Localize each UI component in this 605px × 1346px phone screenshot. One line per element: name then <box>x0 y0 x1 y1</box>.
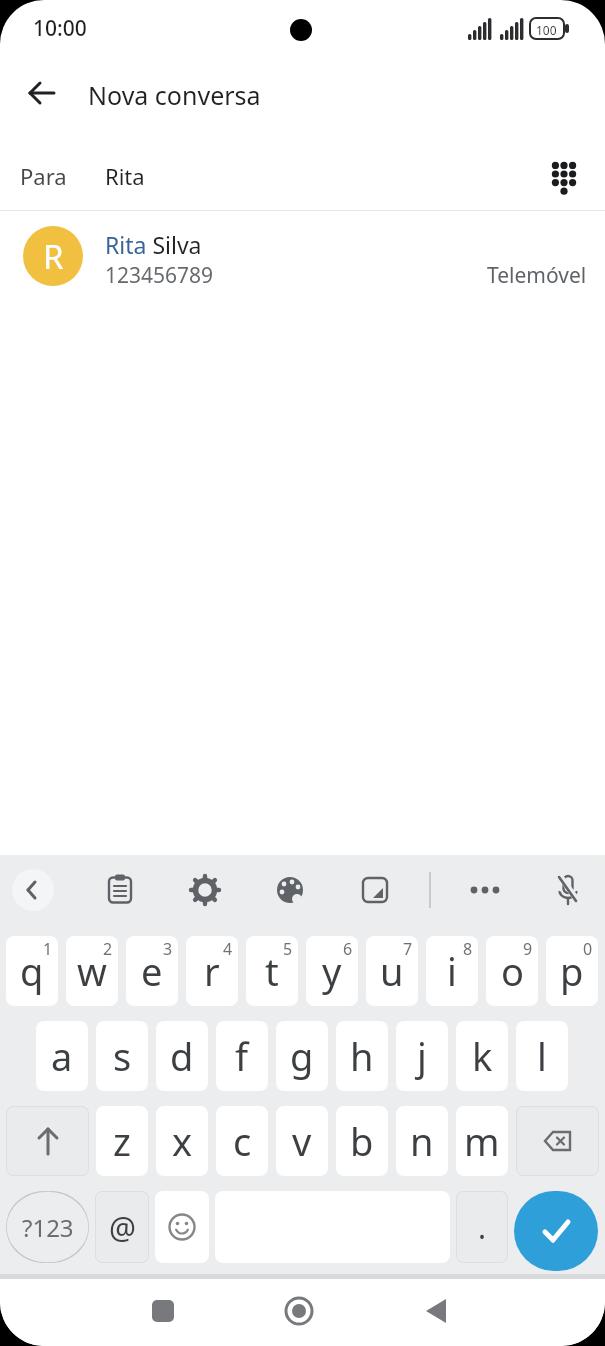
staticText: s <box>113 1030 132 1082</box>
staticText: y <box>322 945 342 997</box>
staticText: Rita Silva <box>105 229 202 260</box>
button[interactable] <box>415 1289 459 1333</box>
staticText: 7 <box>403 938 413 960</box>
button[interactable] <box>6 1106 89 1176</box>
button[interactable]: R <box>0 212 605 302</box>
staticText: i <box>447 945 457 997</box>
button[interactable]: c <box>216 1106 268 1176</box>
button[interactable] <box>268 868 312 912</box>
button[interactable]: u <box>366 936 418 1006</box>
staticText: 3 <box>163 938 173 960</box>
button[interactable]: x <box>156 1106 208 1176</box>
button[interactable] <box>141 1289 185 1333</box>
staticText: u <box>380 945 404 997</box>
button[interactable]: d <box>156 1021 208 1091</box>
staticText: c <box>233 1115 252 1167</box>
staticText: m <box>464 1115 500 1167</box>
staticText: R <box>43 234 64 279</box>
button[interactable]: k <box>456 1021 508 1091</box>
staticText: 2 <box>103 938 113 960</box>
staticText: v <box>292 1115 312 1167</box>
staticText: Para <box>20 161 67 191</box>
button[interactable] <box>20 71 64 115</box>
staticText: k <box>472 1030 493 1082</box>
button[interactable] <box>98 868 142 912</box>
staticText: w <box>77 945 107 997</box>
button[interactable]: v <box>276 1106 328 1176</box>
staticText: h <box>350 1030 374 1082</box>
staticText: e <box>141 945 163 997</box>
staticText: n <box>410 1115 434 1167</box>
staticText: Rita <box>105 161 145 191</box>
staticText: 9 <box>523 938 533 960</box>
button[interactable]: b <box>336 1106 388 1176</box>
button[interactable]: o <box>486 936 538 1006</box>
staticText: b <box>350 1115 374 1167</box>
button[interactable] <box>155 1191 209 1263</box>
staticText: @ <box>109 1207 136 1248</box>
staticText: q <box>20 945 44 997</box>
button[interactable]: z <box>96 1106 148 1176</box>
staticText: g <box>290 1030 314 1082</box>
staticText: 10:00 <box>33 14 87 43</box>
button[interactable] <box>546 868 590 912</box>
staticText: d <box>170 1030 194 1082</box>
button[interactable] <box>542 153 586 197</box>
staticText: Nova conversa <box>88 78 261 112</box>
staticText: 100 <box>536 22 557 38</box>
staticText: 6 <box>343 938 353 960</box>
staticText: 5 <box>283 938 293 960</box>
staticText: p <box>560 945 584 997</box>
staticText: f <box>235 1030 249 1082</box>
staticText: r <box>204 945 220 997</box>
staticText: ?123 <box>22 1211 74 1244</box>
button[interactable]: j <box>396 1021 448 1091</box>
button[interactable]: w <box>66 936 118 1006</box>
button[interactable] <box>183 868 227 912</box>
button[interactable]: q <box>6 936 58 1006</box>
button[interactable]: ?123 <box>6 1191 89 1263</box>
button[interactable]: l <box>516 1021 568 1091</box>
staticText: a <box>51 1030 73 1082</box>
button[interactable]: t <box>246 936 298 1006</box>
button[interactable] <box>277 1289 321 1333</box>
button[interactable] <box>11 868 55 912</box>
button[interactable]: r <box>186 936 238 1006</box>
button[interactable] <box>516 1106 599 1176</box>
button[interactable] <box>463 868 507 912</box>
staticText: 1 <box>43 938 53 960</box>
staticText: Telemóvel <box>487 261 587 290</box>
button[interactable]: g <box>276 1021 328 1091</box>
button[interactable] <box>514 1191 598 1271</box>
button[interactable]: e <box>126 936 178 1006</box>
button[interactable]: f <box>216 1021 268 1091</box>
staticText: l <box>537 1030 547 1082</box>
button[interactable] <box>353 868 397 912</box>
staticText: 8 <box>463 938 473 960</box>
staticText: o <box>501 945 524 997</box>
button[interactable]: s <box>96 1021 148 1091</box>
button[interactable]: n <box>396 1106 448 1176</box>
button[interactable]: y <box>306 936 358 1006</box>
staticText: z <box>113 1115 131 1167</box>
staticText: 0 <box>583 938 593 960</box>
button[interactable]: h <box>336 1021 388 1091</box>
button[interactable]: m <box>456 1106 508 1176</box>
button[interactable]: p <box>546 936 598 1006</box>
staticText: t <box>265 945 279 997</box>
staticText: x <box>172 1115 193 1167</box>
button[interactable]: i <box>426 936 478 1006</box>
staticText: 123456789 <box>105 261 214 290</box>
button[interactable]: @ <box>95 1191 149 1263</box>
staticText: 4 <box>223 938 233 960</box>
button[interactable]: a <box>36 1021 88 1091</box>
button[interactable]: . <box>456 1191 508 1263</box>
staticText: . <box>478 1207 487 1248</box>
staticText: j <box>417 1030 427 1082</box>
